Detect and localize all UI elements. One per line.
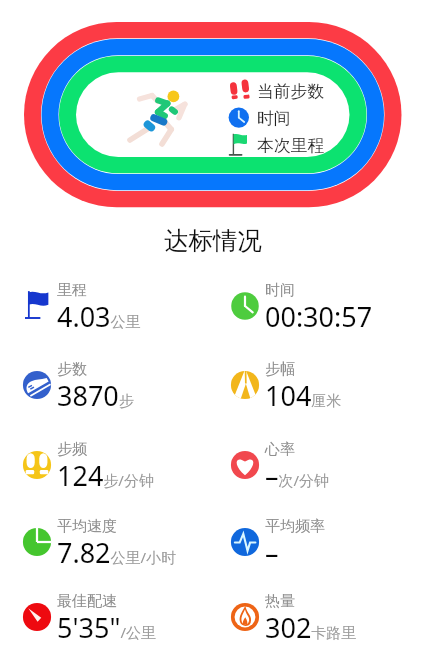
staticText: 7.82公里/小时 [57, 534, 177, 571]
staticText: 里程 [57, 281, 87, 300]
staticText: 步数 [57, 360, 87, 379]
staticText: 平均速度 [57, 517, 117, 536]
staticText: 达标情况 [164, 225, 262, 256]
button[interactable]: 心率 [212, 437, 425, 493]
staticText: 时间 [265, 281, 295, 300]
staticText: 本次里程 [257, 135, 325, 156]
button[interactable]: 热量 [212, 589, 425, 645]
staticText: – [265, 534, 279, 571]
staticText: 104厘米 [265, 377, 342, 414]
button[interactable]: 平均速度 [0, 514, 212, 570]
staticText: 热量 [265, 592, 295, 611]
staticText: 时间 [257, 108, 291, 129]
staticText: –次/分钟 [265, 457, 330, 494]
staticText: 124步/分钟 [57, 457, 154, 494]
button[interactable]: 步幅 [212, 357, 425, 413]
staticText: 最佳配速 [57, 592, 117, 611]
staticText: 00:30:57 [265, 298, 373, 335]
button[interactable]: 本次里程 [257, 135, 325, 156]
button[interactable]: 里程 [0, 278, 212, 334]
button[interactable]: 步频 [0, 437, 212, 493]
button[interactable]: 平均频率 [212, 514, 425, 570]
button[interactable]: 步数 [0, 357, 212, 413]
staticText: 3870步 [57, 377, 134, 414]
button[interactable]: 时间 [257, 108, 291, 129]
staticText: 当前步数 [257, 81, 325, 102]
button[interactable]: 当前步数 [257, 81, 325, 102]
staticText: 4.03公里 [57, 298, 141, 335]
staticText: 心率 [265, 440, 295, 459]
button[interactable]: 时间 [212, 278, 425, 334]
button[interactable]: 最佳配速 [0, 589, 212, 645]
staticText: 5'35"/公里 [57, 609, 157, 646]
staticText: 302卡路里 [265, 609, 357, 646]
staticText: 平均频率 [265, 517, 325, 536]
staticText: 步幅 [265, 360, 295, 379]
staticText: 步频 [57, 440, 87, 459]
